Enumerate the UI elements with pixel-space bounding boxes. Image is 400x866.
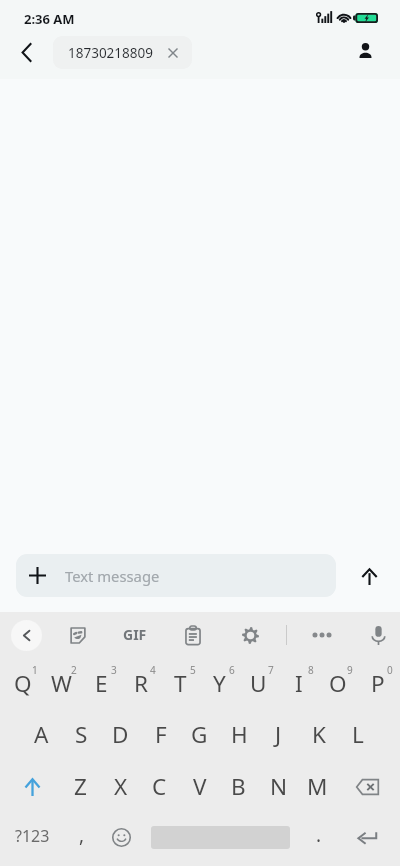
staticText: 4 xyxy=(150,663,156,677)
staticText: 7 xyxy=(268,663,274,677)
button[interactable]: Stickers xyxy=(58,615,98,655)
staticText: C xyxy=(152,771,167,802)
button[interactable]: ?123 xyxy=(3,813,62,863)
button[interactable]: 18730218809 xyxy=(53,36,192,69)
staticText: F xyxy=(155,719,167,750)
button[interactable]: Y xyxy=(200,658,239,708)
button[interactable]: V xyxy=(180,761,219,811)
button[interactable]: Enter xyxy=(338,813,397,863)
button[interactable]: Clipboard xyxy=(173,615,213,655)
staticText: 0 xyxy=(387,663,393,677)
button[interactable]: N xyxy=(259,761,298,811)
button[interactable]: Text message xyxy=(16,554,336,597)
staticText: A xyxy=(34,719,49,750)
staticText: U xyxy=(250,668,267,699)
button[interactable]: More options xyxy=(302,615,342,655)
staticText: 2:36 AM xyxy=(24,10,75,28)
button[interactable]: Backspace xyxy=(338,762,397,812)
staticText: 6 xyxy=(229,663,235,677)
staticText: GIF xyxy=(123,625,147,644)
staticText: L xyxy=(352,719,364,750)
button[interactable]: E xyxy=(82,658,121,708)
staticText: H xyxy=(231,719,248,750)
button[interactable]: F xyxy=(141,709,180,759)
staticText: N xyxy=(270,771,288,802)
staticText: 18730218809 xyxy=(68,44,153,62)
button[interactable]: A xyxy=(22,709,61,759)
button[interactable]: Send message xyxy=(347,555,391,599)
staticText: I xyxy=(295,668,303,699)
staticText: S xyxy=(75,719,88,750)
button[interactable]: C xyxy=(140,761,179,811)
staticText: O xyxy=(329,668,347,699)
button[interactable]: R xyxy=(121,658,160,708)
button[interactable]: H xyxy=(220,709,259,759)
button[interactable]: L xyxy=(338,709,377,759)
button[interactable]: . xyxy=(299,813,339,863)
staticText: , xyxy=(79,822,85,848)
button[interactable]: U xyxy=(239,658,278,708)
button[interactable]: D xyxy=(101,709,140,759)
staticText: 1 xyxy=(32,663,38,677)
staticText: Q xyxy=(14,668,32,699)
button[interactable]: I xyxy=(279,658,318,708)
button[interactable]: Z xyxy=(61,761,100,811)
button[interactable]: W xyxy=(42,658,81,708)
staticText: M xyxy=(307,771,328,802)
staticText: D xyxy=(112,719,129,750)
staticText: G xyxy=(191,719,208,750)
button[interactable]: O xyxy=(318,658,357,708)
staticText: . xyxy=(316,822,322,848)
staticText: W xyxy=(51,668,72,699)
button[interactable]: X xyxy=(101,761,140,811)
staticText: E xyxy=(95,668,108,699)
button[interactable]: , xyxy=(62,813,102,863)
button[interactable]: Hide toolbar xyxy=(11,620,42,651)
staticText: 3 xyxy=(111,663,117,677)
staticText: Z xyxy=(74,771,87,802)
button[interactable]: T xyxy=(161,658,200,708)
staticText: X xyxy=(114,771,128,802)
button[interactable]: Contact details xyxy=(343,28,387,72)
staticText: ?123 xyxy=(15,825,50,847)
staticText: K xyxy=(312,719,326,750)
button[interactable]: G xyxy=(180,709,219,759)
button[interactable]: M xyxy=(298,761,337,811)
staticText: 8 xyxy=(308,663,314,677)
staticText: T xyxy=(174,668,187,699)
button[interactable]: Settings xyxy=(230,615,270,655)
button[interactable]: GIF keyboard xyxy=(115,615,155,655)
staticText: P xyxy=(371,668,385,699)
staticText: J xyxy=(275,719,282,750)
button[interactable]: J xyxy=(259,709,298,759)
button[interactable]: Voice input xyxy=(358,615,398,655)
button[interactable]: Shift xyxy=(3,762,62,812)
button[interactable]: P xyxy=(358,658,397,708)
staticText: Y xyxy=(213,668,226,699)
button[interactable]: S xyxy=(62,709,101,759)
button[interactable]: Back xyxy=(4,30,48,74)
staticText: B xyxy=(231,771,246,802)
staticText: 2 xyxy=(71,663,77,677)
staticText: 9 xyxy=(347,663,353,677)
staticText: Text message xyxy=(65,566,160,586)
button[interactable]: Q xyxy=(3,658,42,708)
button[interactable]: Emoji xyxy=(101,813,141,863)
staticText: 5 xyxy=(190,663,196,677)
staticText: V xyxy=(193,771,207,802)
button[interactable]: K xyxy=(299,709,338,759)
staticText: R xyxy=(134,668,148,699)
button[interactable]: B xyxy=(219,761,258,811)
